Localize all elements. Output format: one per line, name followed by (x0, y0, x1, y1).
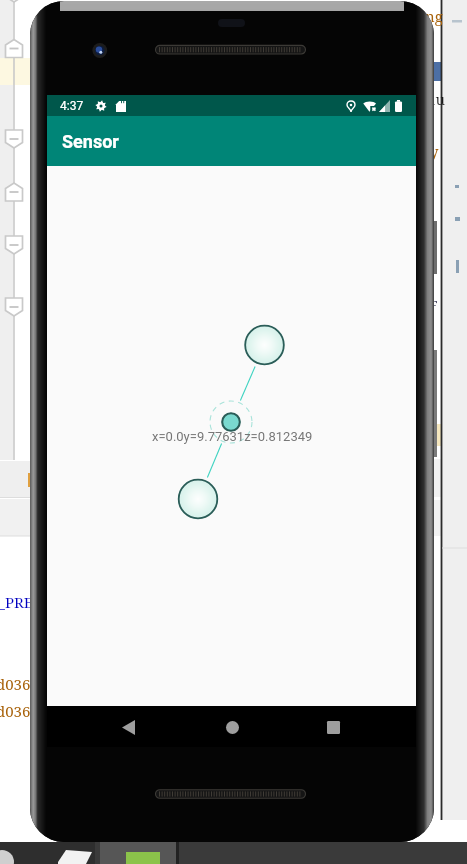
button[interactable]: Back (111, 710, 145, 744)
staticText: d036 (0, 674, 31, 694)
staticText: ng (425, 6, 443, 26)
staticText: x=0.0y=9.77631z=0.812349 (152, 429, 313, 444)
staticText: _PRE (0, 592, 34, 612)
button[interactable]: Sensor (47, 116, 416, 166)
button[interactable]: Home (215, 710, 249, 744)
staticText: y (430, 141, 439, 161)
staticText: 4:37 (60, 99, 84, 113)
button[interactable]: Recent apps (316, 710, 350, 744)
staticText: d036 (0, 701, 31, 721)
staticText: -F (424, 295, 438, 315)
staticText: / (429, 320, 434, 340)
staticText: au (427, 89, 445, 109)
staticText: Sensor (62, 131, 119, 152)
